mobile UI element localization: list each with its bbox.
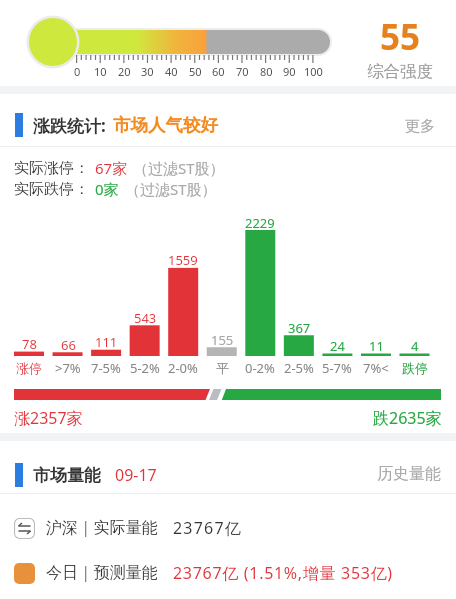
staticText: 沪深｜实际量能 xyxy=(46,518,158,538)
staticText: 24 xyxy=(330,337,345,355)
staticText: 67家 xyxy=(95,158,128,178)
staticText: 09-17 xyxy=(115,464,157,486)
staticText: 市场人气较好 xyxy=(113,114,218,136)
staticText: 23767亿 xyxy=(173,517,242,539)
staticText: 0-2% xyxy=(245,359,275,377)
staticText: （过滤ST股） xyxy=(125,179,217,199)
staticText: 30 xyxy=(141,64,154,79)
staticText: 40 xyxy=(165,64,178,79)
staticText: （过滤ST股） xyxy=(133,158,225,178)
staticText: 111 xyxy=(95,333,118,351)
staticText: 实际跌停： xyxy=(14,180,89,199)
staticText: 7-5% xyxy=(91,359,121,377)
staticText: 1559 xyxy=(168,251,198,269)
staticText: 综合强度 xyxy=(367,61,433,82)
staticText: 平 xyxy=(216,360,229,376)
staticText: 2-0% xyxy=(168,359,198,377)
staticText: 涨2357家 xyxy=(14,407,83,429)
staticText: 11 xyxy=(369,337,384,355)
staticText: 23767亿 (1.51%,增量 353亿) xyxy=(173,562,393,584)
staticText: 4 xyxy=(411,337,419,355)
staticText: >7% xyxy=(55,359,81,377)
staticText: 100 xyxy=(304,64,323,79)
staticText: 50 xyxy=(189,64,202,79)
staticText: 今日｜预测量能 xyxy=(46,563,158,583)
staticText: 10 xyxy=(94,64,107,79)
staticText: 66 xyxy=(61,336,76,354)
staticText: 2-5% xyxy=(284,359,314,377)
button[interactable]: 历史量能 xyxy=(366,461,441,487)
button[interactable]: 更多 xyxy=(395,113,445,139)
staticText: 543 xyxy=(134,309,157,327)
staticText: 7%< xyxy=(363,359,389,377)
button[interactable]: 今日｜预测量能 xyxy=(0,551,456,595)
staticText: 跌停 xyxy=(402,360,428,376)
button[interactable]: 沪深｜实际量能 xyxy=(0,506,456,550)
staticText: 涨跌统计: xyxy=(33,114,106,137)
staticText: 5-7% xyxy=(322,359,352,377)
staticText: 市场量能 xyxy=(33,465,101,486)
staticText: 155 xyxy=(211,331,234,349)
staticText: 2229 xyxy=(245,214,275,232)
staticText: 70 xyxy=(236,64,249,79)
staticText: 55 xyxy=(380,13,421,61)
staticText: 90 xyxy=(283,64,296,79)
staticText: 20 xyxy=(118,64,131,79)
staticText: 78 xyxy=(22,335,37,353)
staticText: 80 xyxy=(260,64,273,79)
staticText: 367 xyxy=(288,319,311,337)
staticText: 涨停 xyxy=(16,360,42,376)
staticText: 跌2635家 xyxy=(373,407,442,429)
staticText: 0家 xyxy=(95,179,119,199)
staticText: 5-2% xyxy=(130,359,160,377)
staticText: 历史量能 xyxy=(377,464,441,484)
staticText: 实际涨停： xyxy=(14,159,89,178)
staticText: 60 xyxy=(212,64,225,79)
staticText: 更多 xyxy=(405,117,435,136)
staticText: 0 xyxy=(74,64,81,79)
